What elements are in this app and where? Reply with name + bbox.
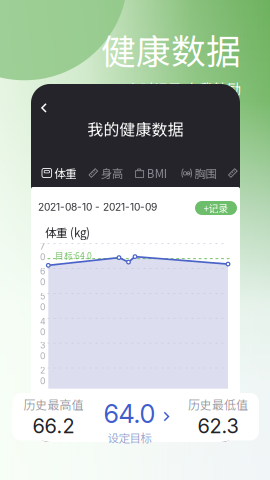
button[interactable]: 历史最高值	[12, 393, 94, 440]
staticText: 设定目标	[107, 429, 151, 446]
staticText: 40	[40, 316, 46, 337]
button[interactable]: 历史最低值	[177, 393, 259, 440]
staticText: 实时记录 自我勉励	[126, 78, 241, 98]
button[interactable]: Back	[34, 98, 54, 118]
staticText: 我的健康数据	[87, 117, 183, 140]
button[interactable]: 体重	[42, 164, 76, 182]
staticText: BMI	[147, 165, 167, 181]
button[interactable]: 64.0	[95, 390, 175, 442]
staticText: 30	[40, 340, 46, 361]
staticText: 20	[40, 365, 46, 386]
staticText: 体重 (kg)	[45, 224, 90, 241]
staticText: 历史最低值	[188, 395, 248, 413]
staticText: 目标:64.0	[55, 249, 92, 261]
button[interactable]: 胸围	[181, 164, 216, 182]
button[interactable]: BMI	[135, 164, 167, 182]
staticText: 66.2	[32, 414, 74, 438]
staticText: 2021-08-10 - 2021-10-09	[38, 201, 157, 213]
staticText: 胸围	[194, 165, 216, 181]
staticText: 身高	[101, 165, 123, 181]
staticText: 64.0	[103, 398, 155, 429]
staticText: 体重	[54, 165, 76, 181]
button[interactable]: 身高	[88, 164, 123, 182]
staticText: 62.3	[197, 414, 238, 438]
staticText: 历史最高值	[23, 395, 83, 413]
staticText: +记录	[203, 201, 228, 215]
staticText: 健康数据	[101, 24, 241, 74]
staticText: 60	[40, 266, 46, 287]
button[interactable]: +记录	[195, 201, 237, 215]
staticText: 70	[40, 241, 46, 262]
staticText: 50	[40, 291, 46, 312]
